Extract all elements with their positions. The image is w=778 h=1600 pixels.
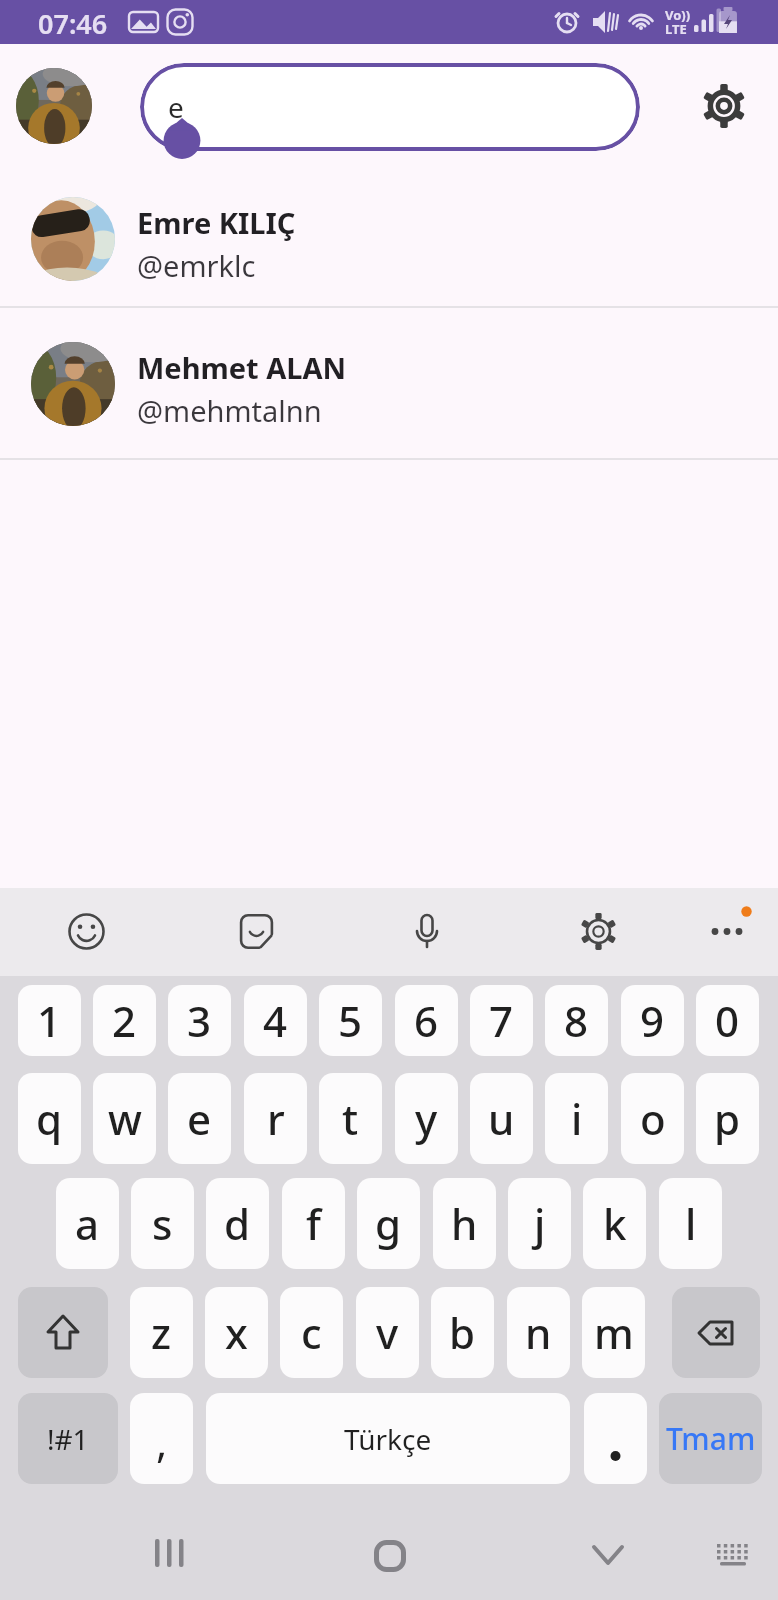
button[interactable]: d bbox=[206, 1178, 269, 1269]
button[interactable] bbox=[702, 84, 746, 128]
button[interactable]: p bbox=[696, 1073, 759, 1164]
staticText: 0 bbox=[715, 992, 740, 1049]
staticText: !#1 bbox=[47, 1420, 89, 1458]
staticText: m bbox=[594, 1304, 634, 1361]
button[interactable]: 4 bbox=[244, 985, 307, 1056]
button[interactable]: m bbox=[582, 1287, 645, 1378]
button[interactable]: !#1 bbox=[18, 1393, 118, 1484]
staticText: e bbox=[168, 88, 184, 126]
staticText: 4 bbox=[263, 992, 288, 1049]
button[interactable]: Tmam bbox=[659, 1393, 762, 1484]
button[interactable]: r bbox=[244, 1073, 307, 1164]
button[interactable]: b bbox=[431, 1287, 494, 1378]
staticText: @emrklc bbox=[137, 246, 256, 285]
button[interactable] bbox=[707, 913, 747, 950]
staticText: a bbox=[75, 1195, 100, 1252]
staticText: q bbox=[36, 1090, 63, 1147]
staticText: Türkçe bbox=[344, 1420, 432, 1458]
button[interactable]: 5 bbox=[319, 985, 382, 1056]
staticText: z bbox=[151, 1304, 172, 1361]
button[interactable] bbox=[672, 1287, 760, 1378]
button[interactable] bbox=[374, 1540, 406, 1572]
button[interactable] bbox=[592, 1545, 624, 1565]
staticText: l bbox=[685, 1195, 697, 1252]
button[interactable]: h bbox=[433, 1178, 496, 1269]
button[interactable]: 7 bbox=[470, 985, 533, 1056]
staticText: s bbox=[152, 1195, 173, 1252]
button[interactable]: Emre KILIÇ bbox=[0, 170, 778, 308]
staticText: Tmam bbox=[666, 1418, 756, 1459]
button[interactable] bbox=[410, 913, 444, 950]
button[interactable]: o bbox=[621, 1073, 684, 1164]
staticText: 6 bbox=[414, 992, 439, 1049]
staticText: Mehmet ALAN bbox=[137, 348, 347, 387]
button[interactable]: y bbox=[395, 1073, 458, 1164]
staticText: 2 bbox=[112, 992, 137, 1049]
staticText: 1 bbox=[37, 992, 62, 1049]
button[interactable]: n bbox=[507, 1287, 570, 1378]
button[interactable]: c bbox=[280, 1287, 343, 1378]
staticText: n bbox=[525, 1304, 552, 1361]
staticText: e bbox=[187, 1090, 212, 1147]
staticText: 7 bbox=[489, 992, 514, 1049]
staticText: , bbox=[156, 1413, 168, 1470]
button[interactable]: z bbox=[130, 1287, 193, 1378]
button[interactable] bbox=[155, 1539, 184, 1567]
staticText: Vo)) LTE bbox=[665, 6, 691, 38]
button[interactable]: j bbox=[508, 1178, 571, 1269]
button[interactable] bbox=[68, 913, 105, 950]
staticText: c bbox=[301, 1304, 322, 1361]
button[interactable]: s bbox=[131, 1178, 194, 1269]
button[interactable]: 2 bbox=[93, 985, 156, 1056]
button[interactable]: e bbox=[140, 63, 640, 151]
button[interactable]: 0 bbox=[696, 985, 759, 1056]
button[interactable]: v bbox=[356, 1287, 419, 1378]
staticText: 07:46 bbox=[38, 5, 108, 39]
button[interactable] bbox=[580, 913, 617, 950]
staticText: j bbox=[534, 1195, 546, 1252]
button[interactable]: k bbox=[583, 1178, 646, 1269]
staticText: 8 bbox=[564, 992, 589, 1049]
button[interactable]: 6 bbox=[395, 985, 458, 1056]
button[interactable] bbox=[584, 1393, 647, 1484]
staticText: b bbox=[449, 1304, 476, 1361]
button[interactable]: , bbox=[130, 1393, 193, 1484]
button[interactable]: Türkçe bbox=[206, 1393, 570, 1484]
button[interactable]: f bbox=[282, 1178, 345, 1269]
staticText: g bbox=[375, 1195, 402, 1252]
staticText: 5 bbox=[338, 992, 363, 1049]
button[interactable]: l bbox=[659, 1178, 722, 1269]
staticText: d bbox=[224, 1195, 251, 1252]
staticText: u bbox=[488, 1090, 515, 1147]
button[interactable]: 1 bbox=[18, 985, 81, 1056]
button[interactable] bbox=[16, 68, 92, 144]
button[interactable]: q bbox=[18, 1073, 81, 1164]
staticText: o bbox=[640, 1090, 666, 1147]
button[interactable]: t bbox=[319, 1073, 382, 1164]
button[interactable]: x bbox=[205, 1287, 268, 1378]
button[interactable]: 8 bbox=[545, 985, 608, 1056]
button[interactable]: Mehmet ALAN bbox=[0, 308, 778, 460]
button[interactable]: u bbox=[470, 1073, 533, 1164]
staticText: w bbox=[108, 1090, 142, 1147]
button[interactable]: a bbox=[56, 1178, 119, 1269]
button[interactable]: 9 bbox=[621, 985, 684, 1056]
button[interactable]: i bbox=[545, 1073, 608, 1164]
staticText: i bbox=[571, 1090, 583, 1147]
staticText: t bbox=[342, 1090, 359, 1147]
button[interactable]: 3 bbox=[168, 985, 231, 1056]
button[interactable] bbox=[18, 1287, 108, 1378]
staticText: 3 bbox=[187, 992, 212, 1049]
staticText: h bbox=[451, 1195, 478, 1252]
button[interactable] bbox=[239, 913, 274, 950]
button[interactable]: w bbox=[93, 1073, 156, 1164]
staticText: 9 bbox=[640, 992, 665, 1049]
staticText: x bbox=[225, 1304, 248, 1361]
button[interactable]: e bbox=[168, 1073, 231, 1164]
staticText: @mehmtalnn bbox=[137, 391, 322, 430]
staticText: y bbox=[415, 1090, 438, 1147]
button[interactable]: g bbox=[357, 1178, 420, 1269]
staticText: p bbox=[714, 1090, 741, 1147]
button[interactable] bbox=[716, 1544, 750, 1568]
staticText: v bbox=[376, 1304, 399, 1361]
